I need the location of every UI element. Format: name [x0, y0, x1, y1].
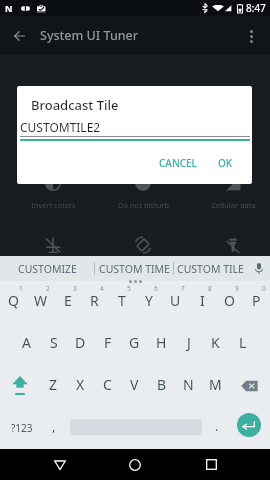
button[interactable]: X — [67, 365, 94, 407]
button[interactable]: H — [148, 323, 175, 365]
staticText: E — [64, 291, 72, 310]
button[interactable]: L — [229, 323, 256, 365]
staticText: R — [90, 291, 99, 310]
button[interactable]: Cellular data — [188, 174, 270, 210]
staticText: . — [215, 417, 219, 435]
staticText: Invert colors — [31, 200, 76, 210]
staticText: O — [224, 291, 235, 310]
staticText: CUSTOM TILE — [177, 262, 244, 276]
button[interactable]: Do not disturb — [98, 174, 188, 210]
staticText: 1 — [19, 284, 23, 293]
button[interactable]: A — [13, 323, 40, 365]
staticText: Q — [8, 291, 19, 310]
staticText: Z — [49, 375, 58, 394]
button[interactable]: K — [202, 323, 229, 365]
button[interactable]: F — [94, 323, 121, 365]
button[interactable]: G — [121, 323, 148, 365]
button[interactable]: CUSTOM TILE — [174, 256, 247, 281]
button[interactable]: ?123 — [0, 407, 44, 449]
button[interactable]: J — [175, 323, 202, 365]
staticText: 4 — [100, 284, 104, 293]
staticText: Cellular data — [211, 200, 256, 210]
button[interactable]: Back — [22, 449, 97, 480]
staticText: V — [130, 375, 139, 394]
staticText: Do not disturb — [118, 200, 169, 210]
staticText: I — [200, 291, 205, 310]
button[interactable]: Delete — [229, 365, 270, 407]
staticText: P — [252, 291, 261, 310]
staticText: B — [157, 375, 167, 394]
staticText: 3 — [73, 284, 77, 293]
button[interactable]: V — [121, 365, 148, 407]
staticText: J — [187, 333, 191, 352]
button[interactable]: 4 — [81, 281, 108, 323]
button[interactable]: 7 — [162, 281, 189, 323]
staticText: , — [52, 417, 56, 435]
button[interactable]: 8 — [189, 281, 216, 323]
button[interactable]: Quick setting — [98, 236, 188, 262]
staticText: 6 — [154, 284, 158, 293]
button[interactable]: 3 — [54, 281, 81, 323]
button[interactable]: Recent apps — [173, 449, 249, 480]
staticText: 2 — [46, 284, 50, 293]
staticText: M — [209, 375, 222, 394]
staticText: G — [129, 333, 140, 352]
button[interactable]: B — [148, 365, 175, 407]
button[interactable]: Quick setting — [8, 236, 98, 262]
staticText: ?123 — [11, 421, 33, 435]
button[interactable]: 5 — [108, 281, 135, 323]
button[interactable]: D — [67, 323, 94, 365]
staticText: N — [183, 375, 194, 394]
button[interactable]: 0 — [243, 281, 270, 323]
staticText: Y — [145, 291, 153, 310]
staticText: S — [50, 333, 58, 352]
staticText: A — [22, 333, 31, 352]
staticText: F — [104, 333, 112, 352]
button[interactable]: Shift — [0, 365, 40, 407]
button[interactable]: Quick setting — [188, 236, 270, 262]
staticText: CUSTOMIZE — [18, 262, 77, 276]
button[interactable]: Z — [40, 365, 67, 407]
staticText: CUSTOM TIME — [99, 262, 170, 276]
button[interactable]: 2 — [27, 281, 54, 323]
button[interactable]: Navigate up — [0, 17, 38, 55]
staticText: N — [5, 2, 13, 14]
staticText: D — [75, 333, 86, 352]
button[interactable]: N — [175, 365, 202, 407]
staticText: T — [118, 291, 126, 310]
staticText: W — [34, 291, 48, 310]
button[interactable]: CANCEL — [151, 149, 205, 177]
button[interactable]: 1 — [0, 281, 27, 323]
staticText: CANCEL — [159, 156, 197, 170]
staticText: X — [76, 375, 85, 394]
staticText: 7 — [181, 284, 185, 293]
button[interactable]: Invert colors — [8, 174, 98, 210]
button[interactable]: CUSTOM TIME — [95, 256, 173, 281]
staticText: U — [170, 291, 181, 310]
button[interactable]: OK — [210, 149, 241, 177]
button[interactable]: 6 — [135, 281, 162, 323]
staticText: 8 — [208, 284, 212, 293]
staticText: CUSTOMTILE2 — [20, 119, 101, 135]
staticText: OK — [218, 156, 233, 170]
staticText: K — [211, 333, 220, 352]
button[interactable]: Space — [64, 407, 207, 449]
staticText: System UI Tuner — [40, 27, 139, 44]
button[interactable]: S — [40, 323, 67, 365]
button[interactable]: C — [94, 365, 121, 407]
button[interactable]: M — [202, 365, 229, 407]
button[interactable]: Enter — [227, 407, 270, 449]
button[interactable]: Voice input — [247, 256, 270, 281]
staticText: L — [239, 333, 247, 352]
staticText: H — [156, 333, 167, 352]
button[interactable]: 9 — [216, 281, 243, 323]
staticText: 9 — [235, 284, 239, 293]
staticText: 8:47 — [246, 1, 266, 15]
button[interactable]: More options — [232, 17, 270, 55]
staticText: 0 — [262, 284, 266, 293]
button[interactable]: Home — [97, 449, 173, 480]
staticText: 5 — [127, 284, 131, 293]
button[interactable]: . — [207, 407, 227, 449]
button[interactable]: CUSTOMIZE — [0, 256, 94, 281]
button[interactable]: , — [44, 407, 64, 449]
